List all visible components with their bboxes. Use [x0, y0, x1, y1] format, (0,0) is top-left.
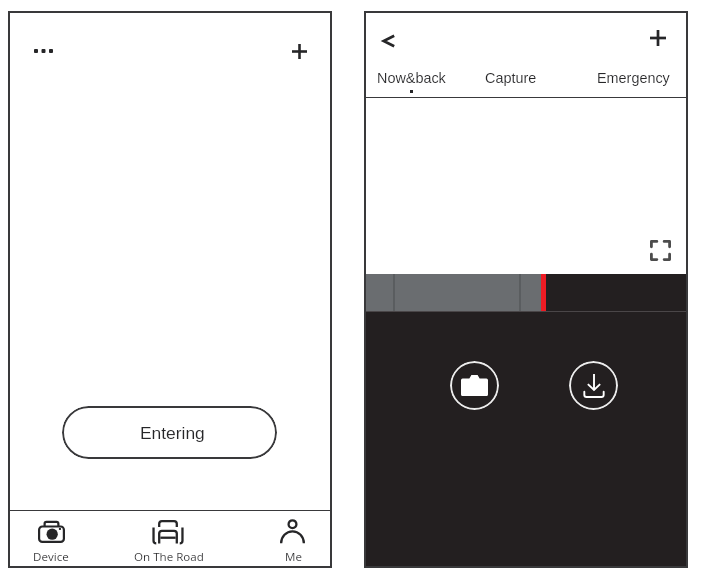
staticText: Emergency — [597, 70, 670, 86]
button[interactable]: Add — [642, 22, 674, 54]
button[interactable]: Back — [372, 25, 404, 57]
button[interactable]: Entering — [62, 406, 277, 459]
staticText: Capture — [485, 70, 537, 86]
button[interactable]: Download — [569, 361, 618, 410]
button[interactable]: Now&back — [367, 68, 456, 95]
staticText: Now&back — [377, 70, 446, 86]
staticText: Device — [33, 549, 69, 565]
staticText: Entering — [140, 423, 205, 442]
staticText: On The Road — [134, 549, 204, 565]
staticText: Me — [285, 549, 302, 565]
button[interactable]: On The Road — [124, 511, 212, 568]
button[interactable]: Device — [7, 511, 95, 568]
button[interactable]: Emergency — [587, 68, 680, 92]
button[interactable]: Capture photo — [450, 361, 499, 410]
button[interactable]: Add — [284, 36, 314, 66]
button[interactable]: More options — [23, 37, 63, 65]
button[interactable]: Me — [248, 511, 336, 568]
button[interactable]: Fullscreen — [646, 236, 674, 264]
button[interactable]: Capture — [475, 68, 547, 92]
